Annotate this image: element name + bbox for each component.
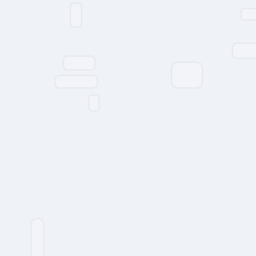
button[interactable]: Action	[232, 43, 256, 58]
button[interactable]: Primary	[63, 56, 95, 70]
button[interactable]: Status	[70, 3, 81, 27]
button[interactable]: Detail	[89, 95, 99, 111]
button[interactable]: Secondary	[55, 75, 97, 88]
button[interactable]: Bar	[31, 218, 44, 256]
button[interactable]: Battery	[241, 8, 256, 20]
